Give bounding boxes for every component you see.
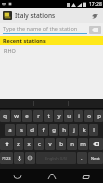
staticText: ?123 (2, 156, 11, 161)
button[interactable]: Type the name of the station (3, 23, 87, 36)
staticText: RHO (4, 47, 16, 54)
button[interactable]: . (77, 152, 87, 164)
button[interactable]: Shift (0, 138, 13, 150)
button[interactable]: f (38, 124, 48, 136)
button[interactable]: h (59, 124, 68, 136)
button[interactable]: d (27, 124, 37, 136)
button[interactable]: a (5, 124, 15, 136)
button[interactable]: m (78, 138, 88, 150)
staticText: k (82, 126, 86, 134)
button[interactable]: k (79, 124, 88, 136)
staticText: a (8, 126, 12, 134)
button[interactable]: Recent apps (69, 169, 103, 183)
staticText: b (59, 140, 63, 148)
button[interactable]: Space (36, 152, 76, 164)
staticText: Italy stations (15, 11, 56, 20)
staticText: d (30, 126, 34, 134)
button[interactable]: r (33, 110, 43, 122)
button[interactable]: t (44, 110, 53, 122)
staticText: i (78, 112, 80, 120)
button[interactable]: Change language (25, 152, 35, 164)
button[interactable]: l (89, 124, 98, 136)
button[interactable]: Share (89, 10, 100, 21)
button[interactable]: Clear (89, 26, 101, 34)
button[interactable]: v (45, 138, 55, 150)
button[interactable]: n (67, 138, 77, 150)
staticText: l (93, 126, 95, 134)
staticText: m (80, 140, 86, 148)
staticText: y (57, 112, 61, 120)
button[interactable]: z (14, 138, 23, 150)
button[interactable]: q (0, 110, 10, 122)
staticText: x (27, 140, 31, 148)
button[interactable]: x (24, 138, 33, 150)
staticText: q (3, 112, 7, 120)
staticText: o (87, 112, 91, 120)
staticText: . (81, 154, 83, 162)
staticText: p (97, 112, 101, 120)
staticText: g (52, 126, 56, 134)
staticText: u (67, 112, 71, 120)
button[interactable]: p (94, 110, 103, 122)
staticText: c (38, 140, 41, 148)
button[interactable]: App icon (3, 11, 12, 20)
staticText: z (17, 140, 20, 148)
staticText: Recent stations (3, 37, 46, 44)
staticText: f (42, 126, 45, 134)
button[interactable]: Voice input (14, 152, 24, 164)
staticText: h (62, 126, 66, 134)
staticText: Type the name of the station (3, 25, 78, 32)
button[interactable]: b (56, 138, 66, 150)
button[interactable]: o (84, 110, 93, 122)
button[interactable]: Back (0, 169, 35, 183)
button[interactable]: e (22, 110, 32, 122)
button[interactable]: j (69, 124, 78, 136)
staticText: s (20, 126, 23, 134)
button[interactable]: RHO (0, 45, 103, 56)
staticText: v (48, 140, 52, 148)
button[interactable]: y (54, 110, 63, 122)
button[interactable]: w (11, 110, 21, 122)
button[interactable]: g (49, 124, 58, 136)
staticText: n (70, 140, 74, 148)
button[interactable]: c (34, 138, 44, 150)
button[interactable]: s (16, 124, 26, 136)
staticText: t (47, 112, 50, 120)
staticText: English (US) (45, 156, 68, 161)
button[interactable]: i (74, 110, 83, 122)
button[interactable]: ?123 (0, 152, 13, 164)
button[interactable]: Home (35, 169, 69, 183)
button[interactable]: Backspace (89, 138, 103, 150)
staticText: e (25, 112, 29, 120)
button[interactable]: u (64, 110, 73, 122)
button[interactable]: Next (88, 152, 103, 164)
staticText: r (37, 112, 40, 120)
staticText: w (14, 112, 19, 120)
staticText: 17:28 (89, 1, 102, 8)
staticText: Next (91, 156, 100, 161)
staticText: j (73, 126, 75, 134)
